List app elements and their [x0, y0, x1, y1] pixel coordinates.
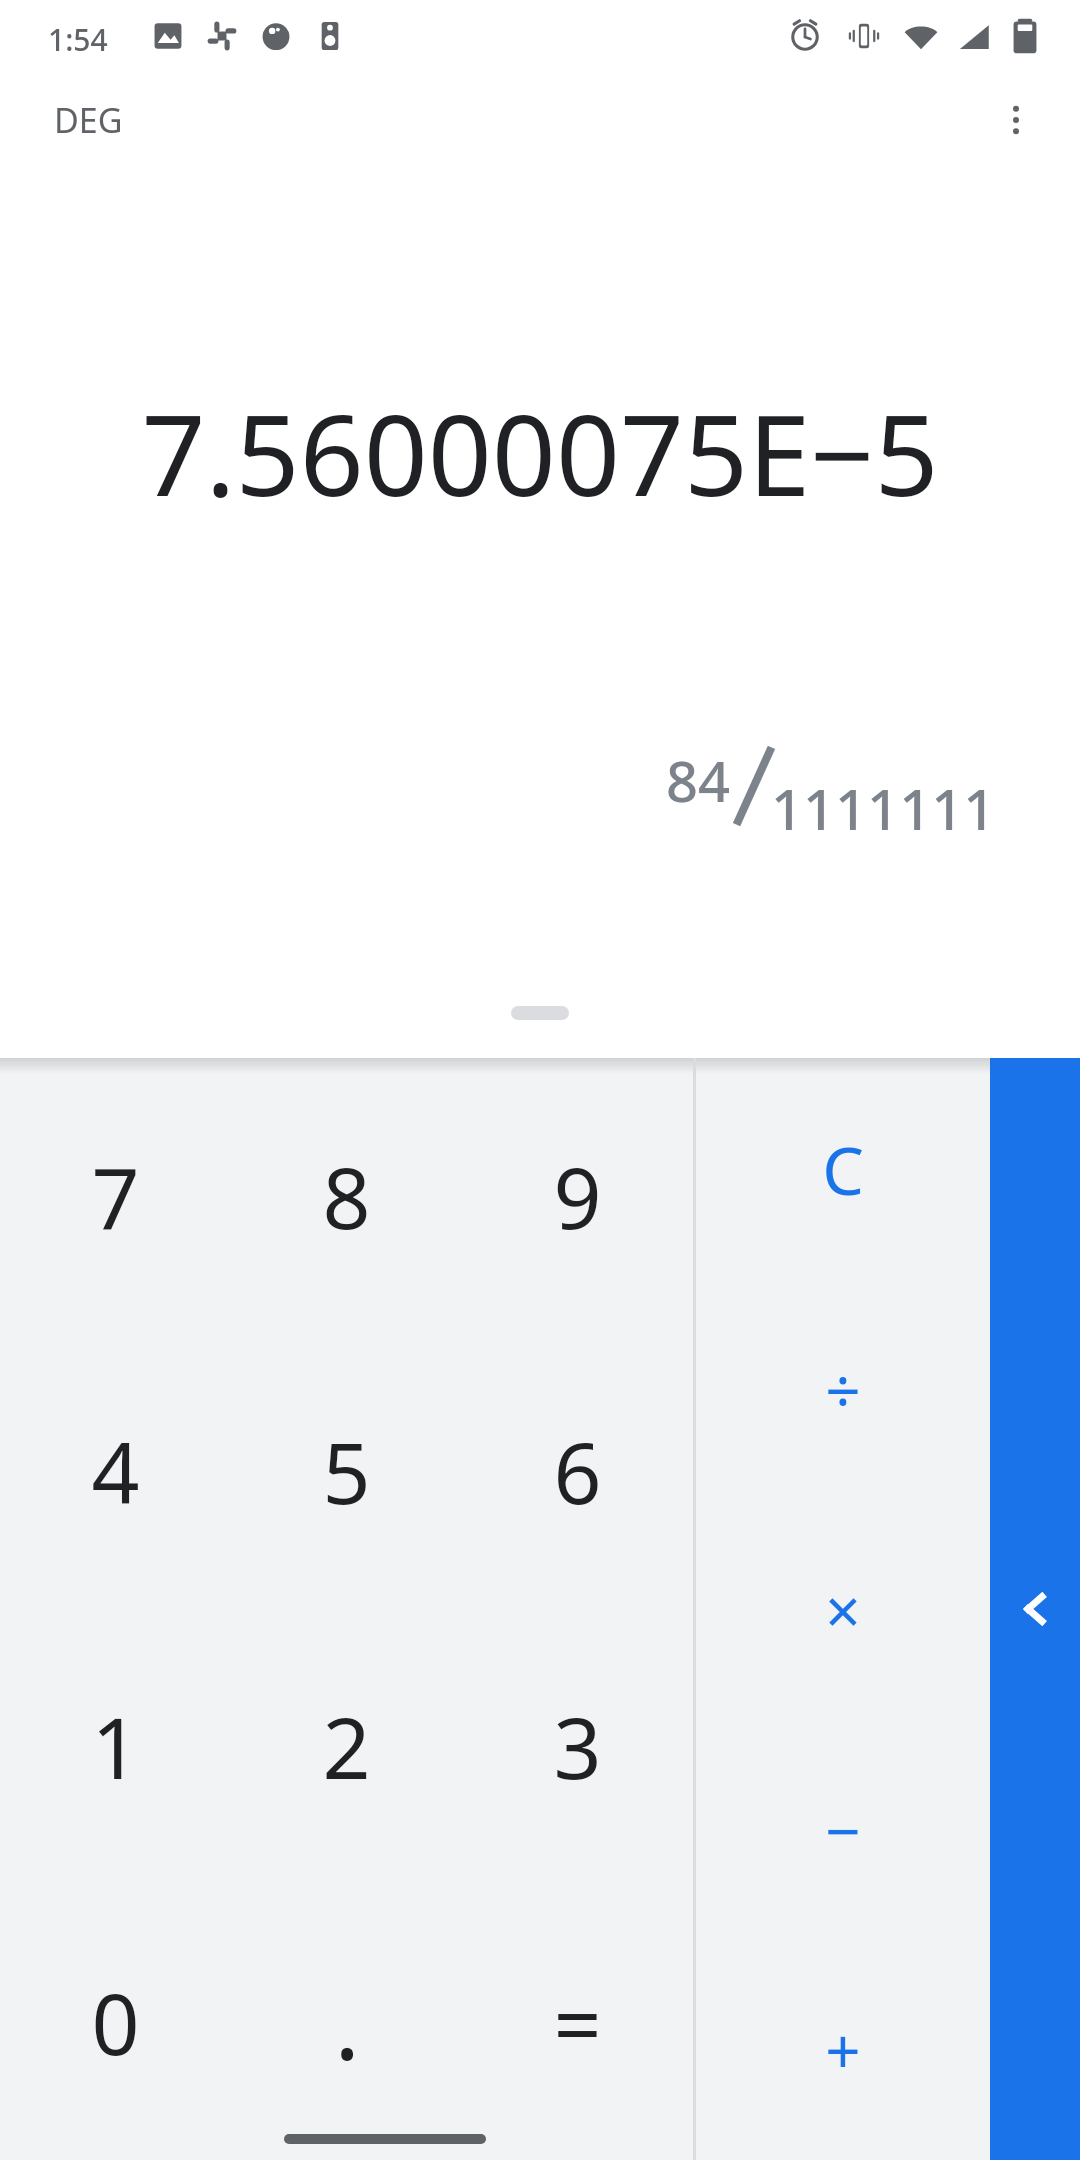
button[interactable]: . — [231, 1884, 462, 2160]
staticText: 7.56000075E−5 — [40, 376, 1040, 529]
staticText: 8 — [322, 1139, 371, 1253]
staticText: 7 — [91, 1139, 140, 1253]
staticText: 2 — [322, 1689, 371, 1803]
staticText: 5 — [322, 1414, 371, 1528]
button[interactable]: 1 — [0, 1608, 231, 1884]
button[interactable]: 5 — [231, 1333, 462, 1608]
staticText: C — [822, 1124, 864, 1214]
staticText: 1:54 — [48, 19, 108, 60]
button[interactable]: − — [696, 1720, 990, 1940]
staticText: DEG — [54, 97, 123, 143]
button[interactable]: ÷ — [696, 1279, 990, 1500]
staticText: 0 — [91, 1965, 140, 2079]
staticText: 6 — [553, 1414, 602, 1528]
button[interactable]: 7 — [0, 1058, 231, 1333]
button[interactable]: 4 — [0, 1333, 231, 1608]
button[interactable]: = — [462, 1884, 693, 2160]
button[interactable]: Open advanced pad — [990, 1058, 1080, 2160]
staticText: ÷ — [825, 1348, 861, 1432]
button[interactable]: C — [696, 1058, 990, 1279]
staticText: + — [825, 2008, 861, 2092]
button[interactable]: × — [696, 1500, 990, 1720]
button[interactable]: 8 — [231, 1058, 462, 1333]
button[interactable]: 6 — [462, 1333, 693, 1608]
button[interactable]: 0 — [0, 1884, 231, 2160]
staticText: 3 — [553, 1689, 602, 1803]
button[interactable]: 2 — [231, 1608, 462, 1884]
staticText: 1 — [91, 1689, 140, 1803]
staticText: . — [334, 1957, 360, 2088]
staticText: 4 — [91, 1414, 140, 1528]
staticText: 9 — [553, 1139, 602, 1253]
staticText: − — [825, 1788, 861, 1872]
button[interactable]: 9 — [462, 1058, 693, 1333]
button[interactable]: 3 — [462, 1608, 693, 1884]
staticText: = — [553, 1965, 602, 2079]
button[interactable]: More options — [974, 78, 1058, 162]
button[interactable]: + — [696, 1940, 990, 2160]
button[interactable]: DEG — [30, 83, 147, 157]
staticText: 1111111 — [771, 770, 996, 846]
staticText: 84 — [666, 742, 731, 818]
button[interactable]: Expand history — [497, 992, 583, 1034]
staticText: × — [825, 1568, 861, 1652]
